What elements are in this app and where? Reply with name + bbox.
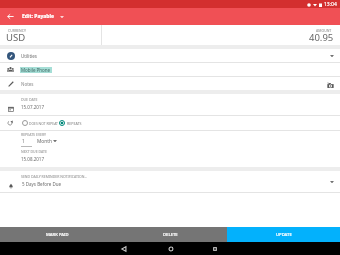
staticText: REPEATS [67,121,82,126]
staticText: DUE DATE [21,97,38,102]
button[interactable]: Change reminder [326,176,338,188]
button[interactable]: UPDATE [227,227,340,242]
button[interactable]: Choose category [326,50,338,62]
staticText: MARK PAID [46,232,69,238]
staticText: 15.07.2017 [21,104,45,110]
staticText: Utilities [21,53,37,59]
button[interactable]: Utilities [0,49,340,62]
staticText: REPEATS EVERY [21,132,47,137]
staticText: Edit: Payable [22,13,54,20]
staticText: UPDATE [276,232,292,238]
staticText: 5 Days Before Due [22,181,61,187]
staticText: SEND DAILY REMINDER NOTIFICATION... [21,174,88,179]
staticText: 13:04 [324,1,337,8]
staticText: DOES NOT REPEAT [29,121,58,126]
button[interactable]: Change period [50,136,60,146]
staticText: Mobile Phone [21,67,51,73]
staticText: DELETE [163,232,178,238]
button[interactable]: MARK PAID [0,227,114,242]
staticText: 15.08.2017 [21,156,45,162]
button[interactable]: Recent apps [208,242,221,255]
button[interactable]: Change type [54,9,70,25]
staticText: CURRENCY [8,28,26,33]
staticText: Notes [21,81,34,87]
button[interactable]: SEND DAILY REMINDER NOTIFICATION... [0,171,340,192]
staticText: 40.95 [309,31,334,44]
button[interactable]: Notes [0,77,340,90]
button[interactable]: DELETE [114,227,227,242]
staticText: USD [6,31,26,44]
button[interactable]: DUE DATE [0,94,340,115]
button[interactable]: DOES NOT REPEAT [0,116,340,130]
staticText: NEXT DUE DATE [21,149,47,154]
staticText: Month [37,138,52,145]
staticText: 1 [22,138,25,144]
button[interactable]: Attach photo [324,79,336,91]
staticText: AMOUNT [316,28,332,33]
button[interactable]: Back [2,8,18,24]
button[interactable]: Home [164,242,177,255]
button[interactable]: Back [117,242,130,255]
button[interactable]: Mobile Phone [0,63,340,76]
